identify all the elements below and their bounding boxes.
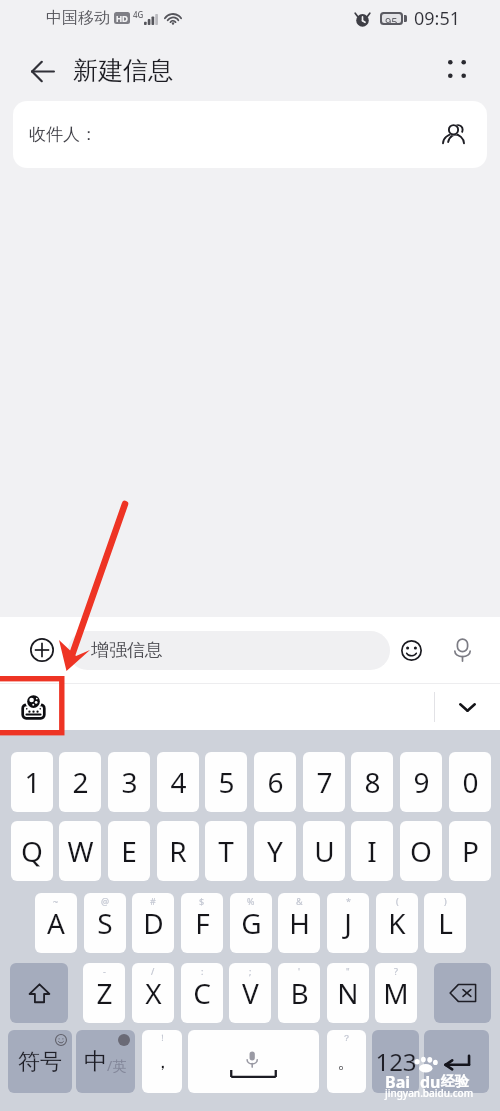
button[interactable]: More options <box>436 48 478 90</box>
staticText: D <box>143 904 164 942</box>
button[interactable]: E <box>108 821 150 881</box>
button[interactable] <box>424 1030 489 1093</box>
staticText: J <box>344 904 352 942</box>
staticText: N <box>337 974 359 1012</box>
staticText: HD <box>116 13 128 24</box>
staticText: Z <box>96 974 113 1012</box>
staticText: " <box>346 965 350 977</box>
staticText: 9 <box>413 763 430 801</box>
staticText: 3 <box>121 763 138 801</box>
button[interactable]: 1 <box>11 752 53 812</box>
button[interactable]: 4 <box>157 752 199 812</box>
staticText: ' <box>298 965 301 977</box>
button[interactable]: Collapse keyboard <box>434 684 500 730</box>
button[interactable]: H <box>278 893 320 953</box>
staticText: ~ <box>53 895 59 907</box>
button[interactable]: Y <box>254 821 296 881</box>
button[interactable]: 6 <box>254 752 296 812</box>
staticText: O <box>410 832 432 870</box>
staticText: $ <box>199 895 205 907</box>
staticText: C <box>193 974 211 1012</box>
staticText: / <box>151 965 155 977</box>
button[interactable]: V <box>229 963 271 1023</box>
button[interactable]: K <box>376 893 418 953</box>
staticText: T <box>218 832 234 870</box>
staticText: ！ <box>158 1032 167 1043</box>
button[interactable]: O <box>400 821 442 881</box>
staticText: 4 <box>170 763 187 801</box>
staticText: V <box>242 974 259 1012</box>
staticText: # <box>150 895 156 907</box>
button[interactable]: 3 <box>108 752 150 812</box>
button[interactable]: Z <box>83 963 125 1023</box>
button[interactable]: 8 <box>351 752 393 812</box>
button[interactable]: Q <box>11 821 53 881</box>
button[interactable] <box>188 1030 319 1093</box>
button[interactable]: A <box>35 893 77 953</box>
button[interactable]: J <box>327 893 369 953</box>
staticText: du <box>420 1071 441 1093</box>
staticText: 经验 <box>441 1073 469 1091</box>
staticText: U <box>314 832 335 870</box>
button[interactable]: L <box>424 893 466 953</box>
button[interactable]: 收件人： <box>13 101 487 168</box>
staticText: * <box>346 895 351 907</box>
staticText: 中 <box>84 1047 107 1076</box>
staticText: ？ <box>342 1032 351 1043</box>
staticText: B <box>290 974 309 1012</box>
staticText: I <box>367 832 377 870</box>
button[interactable]: 。 <box>327 1030 366 1093</box>
staticText: 123 <box>375 1045 417 1078</box>
staticText: 收件人： <box>29 124 97 145</box>
button[interactable]: 增强信息 <box>68 631 390 670</box>
staticText: 4G <box>133 9 144 20</box>
staticText: W <box>67 832 94 870</box>
button[interactable]: S <box>84 893 126 953</box>
button[interactable]: B <box>278 963 320 1023</box>
button[interactable]: X <box>132 963 174 1023</box>
button[interactable]: 7 <box>303 752 345 812</box>
button[interactable]: P <box>449 821 491 881</box>
staticText: X <box>145 974 162 1012</box>
button[interactable]: 5 <box>205 752 247 812</box>
button[interactable]: 中 <box>76 1030 135 1093</box>
staticText: H <box>289 904 310 942</box>
button[interactable]: Back <box>19 47 67 95</box>
button[interactable]: Voice input <box>443 631 481 669</box>
button[interactable]: Switch input method <box>14 688 52 726</box>
staticText: ( <box>396 895 399 907</box>
button[interactable]: N <box>327 963 369 1023</box>
button[interactable]: I <box>351 821 393 881</box>
staticText: R <box>169 832 187 870</box>
staticText: 5 <box>218 763 235 801</box>
staticText: 符号 <box>18 1048 62 1076</box>
staticText: jingyan.baidu.com <box>385 1086 474 1100</box>
staticText: L <box>438 904 453 942</box>
staticText: @ <box>101 895 110 907</box>
button[interactable]: 9 <box>400 752 442 812</box>
staticText: 中国移动 <box>46 8 110 28</box>
button[interactable]: T <box>205 821 247 881</box>
button[interactable]: 2 <box>59 752 101 812</box>
staticText: 7 <box>316 763 333 801</box>
button[interactable]: G <box>230 893 272 953</box>
button[interactable]: M <box>375 963 417 1023</box>
button[interactable]: F <box>181 893 223 953</box>
button[interactable]: 符号 <box>8 1030 72 1093</box>
button[interactable]: U <box>303 821 345 881</box>
staticText: 0 <box>462 763 479 801</box>
button[interactable]: 0 <box>449 752 491 812</box>
staticText: ， <box>153 1050 172 1074</box>
button[interactable] <box>434 963 491 1023</box>
button[interactable]: Choose contact <box>437 117 473 153</box>
button[interactable]: ， <box>142 1030 182 1093</box>
button[interactable]: C <box>181 963 223 1023</box>
button[interactable]: Emoji <box>392 631 430 669</box>
button[interactable]: 123 <box>372 1030 419 1093</box>
staticText: P <box>462 832 479 870</box>
button[interactable]: D <box>132 893 174 953</box>
button[interactable] <box>10 963 68 1023</box>
button[interactable]: W <box>59 821 101 881</box>
button[interactable]: Add attachment <box>20 628 64 672</box>
button[interactable]: R <box>157 821 199 881</box>
